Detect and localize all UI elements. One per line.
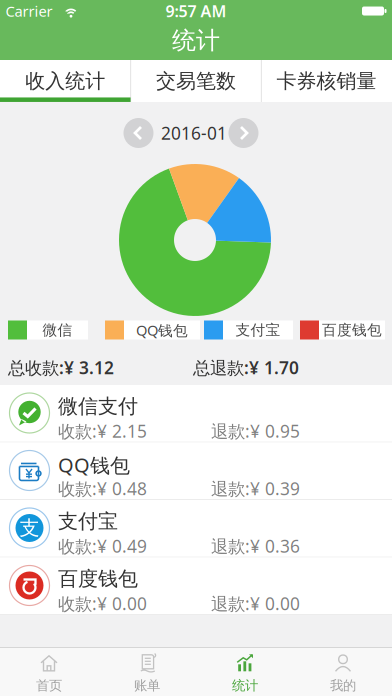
staticText: 2016-01	[161, 121, 227, 144]
staticText: 卡券核销量	[277, 69, 377, 93]
button[interactable]: 卡券核销量	[262, 60, 392, 102]
staticText: 微信支付	[58, 394, 138, 419]
button[interactable]: 账单	[98, 647, 196, 696]
staticText: 微信	[42, 321, 72, 339]
staticText: 首页	[36, 677, 62, 694]
staticText: 收款:¥ 0.49	[58, 534, 147, 557]
button[interactable]: 我的	[294, 647, 392, 696]
button[interactable]: 统计	[196, 647, 294, 696]
staticText: 总退款:¥ 1.70	[193, 356, 299, 379]
button[interactable]: Next month	[228, 118, 258, 148]
button[interactable]: 百度钱包	[0, 557, 392, 615]
staticText: QQ钱包	[58, 451, 130, 478]
staticText: 账单	[134, 677, 160, 694]
button[interactable]: 微信支付	[0, 385, 392, 442]
staticText: 收款:¥ 0.00	[58, 592, 147, 615]
button[interactable]: QQ钱包	[0, 442, 392, 500]
staticText: 9:57 AM	[165, 0, 226, 22]
staticText: 总收款:¥ 3.12	[8, 356, 114, 379]
staticText: 交易笔数	[156, 69, 236, 93]
button[interactable]: 交易笔数	[131, 60, 261, 102]
button[interactable]: 收入统计	[0, 60, 130, 102]
staticText: 统计	[172, 26, 220, 55]
staticText: Carrier	[5, 1, 52, 21]
staticText: 收款:¥ 2.15	[58, 419, 147, 442]
staticText: 统计	[232, 677, 258, 694]
button[interactable]: 首页	[0, 647, 98, 696]
button[interactable]: Previous month	[123, 118, 153, 148]
staticText: 退款:¥ 0.39	[211, 477, 300, 500]
staticText: 支	[19, 516, 39, 540]
staticText: 收款:¥ 0.48	[58, 477, 147, 500]
staticText: QQ钱包	[136, 320, 188, 340]
staticText: 百度钱包	[322, 321, 382, 339]
staticText: 百度钱包	[58, 566, 138, 591]
staticText: 支付宝	[58, 509, 118, 534]
staticText: 退款:¥ 0.00	[211, 592, 300, 615]
staticText: 我的	[330, 677, 356, 694]
staticText: 退款:¥ 0.95	[211, 419, 300, 442]
staticText: 收入统计	[25, 69, 105, 93]
staticText: 支付宝	[235, 321, 280, 339]
button[interactable]: 支	[0, 500, 392, 557]
staticText: 退款:¥ 0.36	[211, 534, 300, 557]
